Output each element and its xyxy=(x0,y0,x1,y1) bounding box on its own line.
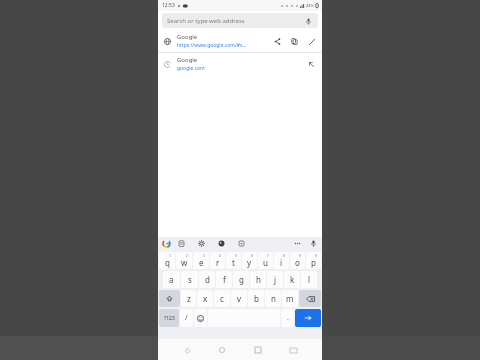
staticText: 4 xyxy=(219,253,222,258)
button[interactable]: k xyxy=(284,271,300,288)
button[interactable]: d xyxy=(199,271,215,288)
staticText: Search or type web address xyxy=(167,17,245,25)
button[interactable]: v xyxy=(231,290,247,307)
button[interactable]: Settings xyxy=(196,238,207,249)
staticText: . xyxy=(287,313,289,323)
button[interactable]: b xyxy=(248,290,264,307)
button[interactable]: 2 xyxy=(176,252,192,269)
staticText: h xyxy=(256,274,261,285)
button[interactable]: Go xyxy=(295,309,321,327)
staticText: 2 xyxy=(186,253,189,258)
button[interactable]: Copy xyxy=(289,36,300,47)
staticText: y xyxy=(247,257,252,268)
button[interactable]: Recents xyxy=(251,343,265,357)
button[interactable]: Voice input xyxy=(308,238,319,249)
button[interactable]: 7 xyxy=(258,252,273,269)
staticText: https://www.google.com/#s... xyxy=(177,42,247,49)
staticText: g xyxy=(239,274,244,285)
button[interactable]: Keyboard down xyxy=(286,343,300,357)
button[interactable]: More options xyxy=(292,238,303,249)
staticText: ?123 xyxy=(164,315,175,322)
button[interactable]: a xyxy=(163,271,180,288)
staticText: u xyxy=(263,257,268,268)
staticText: 8 xyxy=(283,253,286,258)
staticText: 3 xyxy=(203,253,206,258)
staticText: l xyxy=(308,274,311,285)
staticText: n xyxy=(271,293,276,304)
staticText: 12:53 xyxy=(162,2,175,9)
staticText: e xyxy=(199,257,204,268)
button[interactable]: m xyxy=(282,290,298,307)
staticText: s xyxy=(188,274,192,285)
staticText: 5 xyxy=(235,253,238,258)
staticText: google.com xyxy=(177,65,205,72)
button[interactable]: Google xyxy=(158,53,322,75)
staticText: z xyxy=(187,293,191,304)
button[interactable]: Sticker xyxy=(236,238,247,249)
staticText: 6 xyxy=(251,253,254,258)
button[interactable]: ?123 xyxy=(159,309,179,327)
staticText: 44% xyxy=(306,3,314,8)
button[interactable]: 6 xyxy=(242,252,257,269)
button[interactable]: Clipboard xyxy=(176,238,187,249)
button[interactable]: x xyxy=(197,290,213,307)
button[interactable]: Edit xyxy=(306,36,317,47)
button[interactable]: f xyxy=(216,271,232,288)
button[interactable]: Search or type web address xyxy=(162,13,318,28)
staticText: r xyxy=(216,257,220,268)
staticText: k xyxy=(290,274,295,285)
button[interactable]: Backspace xyxy=(299,290,321,307)
button[interactable]: Google xyxy=(158,30,322,52)
button[interactable]: / xyxy=(180,309,193,327)
button[interactable]: Voice search xyxy=(303,16,313,26)
button[interactable]: g xyxy=(233,271,249,288)
staticText: f xyxy=(223,274,226,285)
button[interactable]: 9 xyxy=(290,252,305,269)
staticText: d xyxy=(205,274,210,285)
staticText: p xyxy=(311,257,316,268)
button[interactable]: 5 xyxy=(226,252,241,269)
button[interactable]: c xyxy=(214,290,230,307)
staticText: j xyxy=(274,274,277,285)
button[interactable]: Shift xyxy=(159,290,180,307)
button[interactable]: Share xyxy=(272,36,283,47)
staticText: i xyxy=(280,257,283,268)
staticText: q xyxy=(165,257,170,268)
staticText: 0 xyxy=(315,253,318,258)
staticText: b xyxy=(254,293,259,304)
button[interactable]: Emoji xyxy=(194,309,207,327)
button[interactable]: l xyxy=(301,271,317,288)
staticText: Google xyxy=(177,56,198,64)
button[interactable]: z xyxy=(181,290,196,307)
staticText: 1 xyxy=(169,253,172,258)
button[interactable]: . xyxy=(281,309,294,327)
staticText: v xyxy=(237,293,242,304)
staticText: Google xyxy=(177,33,198,41)
staticText: 9 xyxy=(299,253,302,258)
staticText: x xyxy=(203,293,208,304)
staticText: 7 xyxy=(267,253,270,258)
staticText: / xyxy=(185,313,188,323)
button[interactable]: 1 xyxy=(159,252,175,269)
button[interactable]: Emoji / themes xyxy=(216,238,227,249)
button[interactable]: Insert suggestion xyxy=(306,59,317,70)
staticText: a xyxy=(169,274,174,285)
staticText: t xyxy=(232,257,235,268)
staticText: m xyxy=(286,293,294,304)
button[interactable]: s xyxy=(181,271,198,288)
button[interactable]: 8 xyxy=(274,252,289,269)
button[interactable]: 0 xyxy=(306,252,321,269)
button[interactable]: Google xyxy=(161,238,172,249)
staticText: w xyxy=(181,257,188,268)
staticText: c xyxy=(220,293,224,304)
button[interactable]: n xyxy=(265,290,281,307)
button[interactable]: j xyxy=(267,271,283,288)
button[interactable]: 4 xyxy=(210,252,225,269)
staticText: o xyxy=(295,257,300,268)
button[interactable]: Home xyxy=(215,343,229,357)
button[interactable]: h xyxy=(250,271,266,288)
button[interactable]: Back xyxy=(180,343,194,357)
button[interactable]: 3 xyxy=(193,252,209,269)
